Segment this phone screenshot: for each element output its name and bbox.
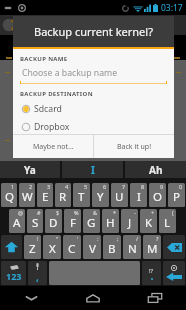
- button[interactable]: Comma: [28, 261, 47, 285]
- staticText: Maybe not...: [33, 142, 74, 152]
- staticText: (: [172, 209, 174, 216]
- staticText: X: [49, 241, 56, 257]
- button[interactable]: *: [102, 209, 119, 233]
- staticText: 0: [179, 183, 183, 190]
- button[interactable]: +: [140, 209, 157, 233]
- button[interactable]: 1: [1, 183, 17, 207]
- staticText: C: [68, 241, 76, 257]
- staticText: H: [106, 215, 115, 231]
- staticText: S: [32, 215, 39, 231]
- button[interactable]: 3: [37, 183, 53, 207]
- staticText: J: [128, 215, 132, 231]
- button[interactable]: Enter: [163, 261, 185, 285]
- staticText: D: [49, 215, 58, 231]
- staticText: 4: [65, 183, 69, 190]
- button[interactable]: 5: [73, 183, 90, 207]
- staticText: @: [18, 209, 23, 216]
- staticText: N: [128, 241, 137, 257]
- button[interactable]: -: [121, 209, 138, 233]
- button[interactable]: Shift: [1, 235, 22, 259]
- staticText: Choose a backup name: [22, 67, 118, 79]
- staticText: Ya: [24, 163, 36, 177]
- staticText: !: [37, 235, 39, 242]
- staticText: *: [113, 209, 117, 216]
- button[interactable]: 0: [168, 183, 185, 207]
- button[interactable]: ;: [103, 235, 121, 259]
- staticText: 03:17: [161, 2, 183, 14]
- button[interactable]: ": [43, 235, 61, 259]
- staticText: %: [74, 209, 79, 216]
- staticText: BACKUP DESTINATION: [20, 90, 93, 98]
- staticText: P: [173, 189, 180, 205]
- staticText: 123: [6, 270, 22, 282]
- staticText: 8: [141, 183, 145, 190]
- button[interactable]: 7: [111, 183, 128, 207]
- staticText: V: [89, 241, 96, 257]
- button[interactable]: Ya: [0, 161, 60, 178]
- button[interactable]: (: [159, 209, 176, 233]
- button[interactable]: Maybe not...: [13, 135, 93, 158]
- staticText: G: [87, 215, 96, 231]
- button[interactable]: I: [62, 161, 123, 178]
- staticText: B: [108, 241, 116, 257]
- staticText: 3: [47, 183, 51, 190]
- staticText: L: [164, 215, 171, 231]
- staticText: O: [153, 189, 162, 205]
- staticText: R: [59, 189, 67, 205]
- button[interactable]: $: [45, 209, 62, 233]
- staticText: Y: [97, 189, 104, 205]
- staticText: U: [115, 189, 124, 205]
- staticText: :: [97, 235, 99, 242]
- staticText: Z: [29, 241, 36, 257]
- staticText: ;: [117, 235, 119, 242]
- button[interactable]: &: [83, 209, 100, 233]
- staticText: T: [78, 189, 85, 205]
- staticText: Dropbox: [34, 121, 70, 133]
- staticText: 7: [122, 183, 126, 190]
- button[interactable]: 9: [149, 183, 166, 207]
- staticText: ?: [156, 235, 159, 242]
- button[interactable]: 6: [92, 183, 109, 207]
- button[interactable]: Home: [62, 286, 124, 310]
- button[interactable]: 2: [19, 183, 35, 207]
- button[interactable]: Back it up!: [94, 135, 174, 158]
- staticText: I: [137, 189, 141, 205]
- staticText: #: [37, 209, 41, 216]
- staticText: I: [91, 163, 95, 177]
- staticText: -: [134, 209, 136, 216]
- button[interactable]: 8: [130, 183, 147, 207]
- button[interactable]: ': [63, 235, 81, 259]
- staticText: 2: [29, 183, 33, 190]
- button[interactable]: ?: [143, 235, 161, 259]
- staticText: $: [56, 209, 60, 216]
- button[interactable]: Symbols: [1, 261, 26, 285]
- button[interactable]: Delete: [163, 235, 185, 259]
- staticText: !?: [149, 267, 154, 275]
- staticText: +: [151, 209, 155, 216]
- button[interactable]: %: [64, 209, 81, 233]
- staticText: 5: [84, 183, 88, 190]
- button[interactable]: Recents: [124, 286, 186, 310]
- button[interactable]: :: [83, 235, 101, 259]
- button[interactable]: 4: [55, 183, 71, 207]
- staticText: F: [70, 215, 76, 231]
- button[interactable]: /: [123, 235, 141, 259]
- button[interactable]: #: [27, 209, 43, 233]
- staticText: K: [145, 215, 153, 231]
- button[interactable]: Ah: [125, 161, 186, 178]
- staticText: 9: [160, 183, 164, 190]
- button[interactable]: Dropbox: [20, 120, 167, 134]
- staticText: Q: [5, 189, 14, 205]
- staticText: Ah: [149, 163, 163, 177]
- staticText: 6: [103, 183, 107, 190]
- button[interactable]: Back: [0, 286, 62, 310]
- button[interactable]: Sdcard: [20, 102, 167, 116]
- staticText: Back it up!: [117, 142, 152, 152]
- staticText: /: [136, 235, 139, 242]
- button[interactable]: !: [24, 235, 41, 259]
- staticText: ": [56, 235, 59, 242]
- staticText: ': [77, 235, 79, 242]
- button[interactable]: Period: [142, 261, 161, 285]
- button[interactable]: @: [9, 209, 25, 233]
